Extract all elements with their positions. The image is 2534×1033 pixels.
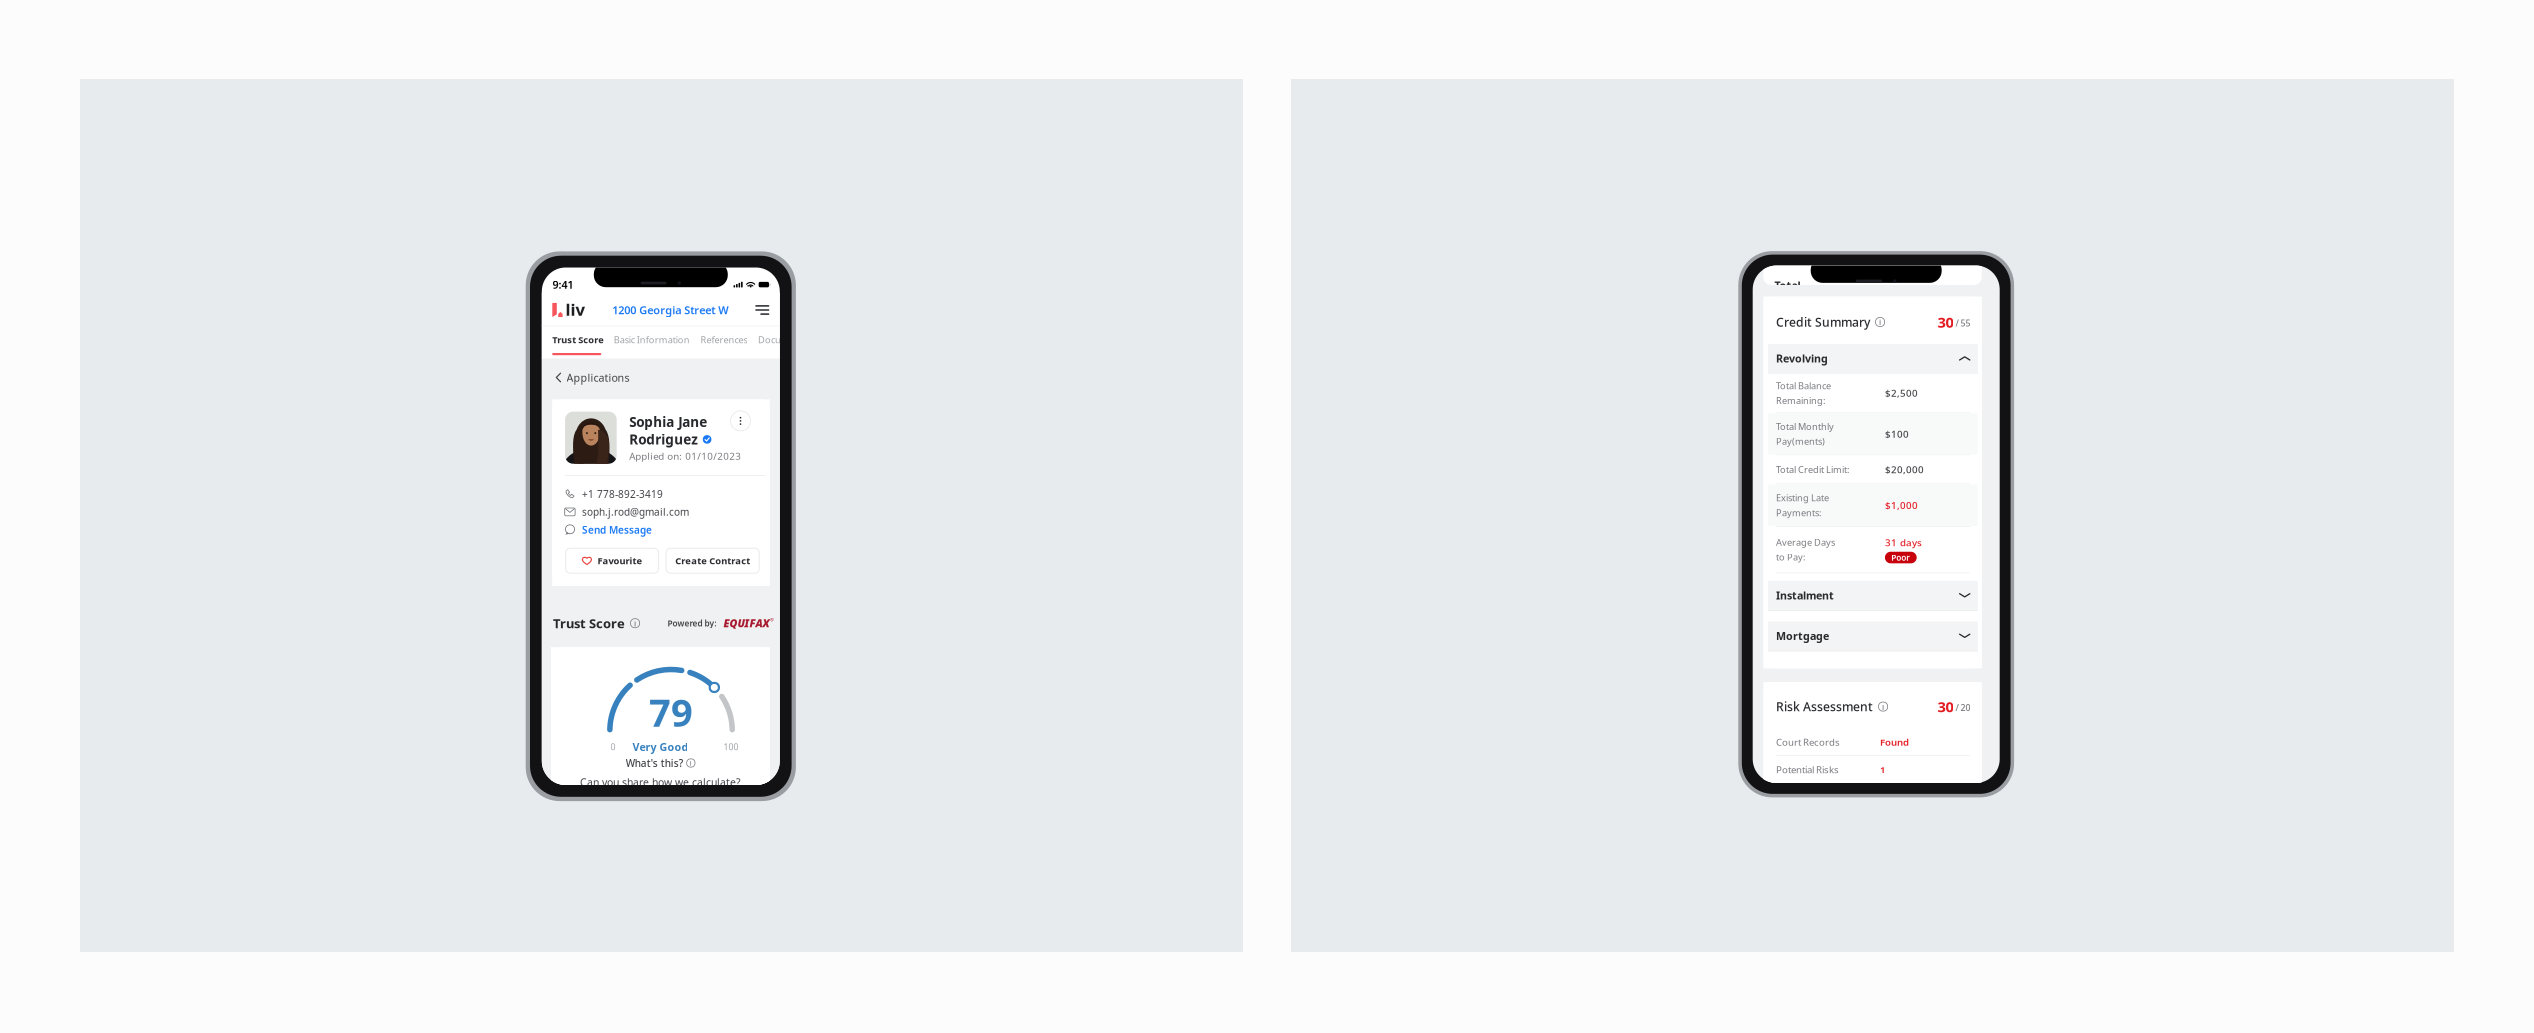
staticText: Trust Score [552,333,603,346]
staticText: Mortgage [1776,628,1829,643]
staticText: Pay(ments) [1776,435,1825,447]
staticText: Very Good [632,739,688,754]
button[interactable]: liv home [552,302,585,317]
staticText: Total [1774,278,1800,292]
button[interactable]: Send Message [565,523,755,536]
staticText: Poor [1891,552,1910,563]
staticText: i [634,618,636,629]
staticText: $20,000 [1885,463,1924,476]
staticText: / 20 [1953,702,1970,714]
button[interactable]: What's this? [551,756,770,770]
button[interactable]: 1200 Georgia Street W [612,303,728,317]
staticText: Total Monthly [1776,420,1834,433]
button[interactable]: Mortgage [1768,621,1978,650]
staticText: References [700,333,747,346]
staticText: $1,000 [1885,498,1918,512]
staticText: $2,500 [1885,386,1918,400]
staticText: Remaining: [1776,394,1825,407]
staticText: 0 [610,741,615,753]
staticText: i [1879,317,1881,327]
button[interactable]: Menu [755,305,769,315]
staticText: 30 [1937,697,1953,717]
staticText: Total Balance [1776,379,1831,392]
staticText: / 55 [1953,317,1970,329]
staticText: Total Credit Limit: [1776,463,1849,476]
staticText: Revolving [1776,351,1828,366]
staticText: Payments: [1776,506,1821,519]
staticText: EQUIFAX [723,616,769,630]
staticText: Trust Score [553,614,625,632]
staticText: What's this? [626,756,683,770]
staticText: Risk Assessment [1776,698,1873,715]
button[interactable]: Revolving [1768,344,1978,373]
staticText: Can you share how we calculate? [580,775,741,789]
staticText: 100 [723,741,738,753]
staticText: i [1882,701,1884,712]
staticText: Credit Summary [1776,314,1870,330]
staticText: Applications [566,370,629,385]
staticText: Powered by: [667,618,716,629]
staticText: soph.j.rod@gmail.com [582,505,689,519]
staticText: ® [770,617,774,623]
staticText: 9:41 [552,277,573,292]
staticText: Instalment [1776,588,1834,602]
button[interactable]: Favourite [566,548,659,573]
button[interactable]: Instalment [1768,581,1978,610]
staticText: to Pay: [1776,551,1805,563]
staticText: Basic Information [614,333,690,346]
button[interactable]: Create Contract [666,548,759,573]
staticText: 1 [1880,763,1885,776]
staticText: Docum [758,333,790,346]
staticText: Court Records [1776,736,1840,749]
staticText: Average Days [1776,536,1835,548]
staticText: Applied on: 01/10/2023 [629,449,741,463]
staticText: 1200 Georgia Street W [612,303,728,317]
staticText: Favourite [597,554,642,567]
button[interactable]: soph.j.rod@gmail.com [565,505,755,518]
staticText: 31 days [1885,536,1922,549]
staticText: Create Contract [675,554,750,567]
staticText: 79 [649,686,693,738]
button[interactable]: +1 778-892-3419 [565,487,755,500]
staticText: liv [565,298,585,321]
staticText: +1 778-892-3419 [582,487,663,501]
staticText: i [690,759,692,768]
staticText: Rodriguez [629,430,698,448]
staticText: Send Message [582,523,652,537]
staticText: $100 [1885,427,1909,440]
staticText: Existing Late [1776,491,1829,504]
staticText: Found [1880,736,1909,749]
button[interactable]: Applications [556,367,676,387]
staticText: 30 [1937,312,1953,332]
staticText: Sophia Jane [629,412,707,431]
button[interactable]: More options [730,411,750,431]
staticText: Potential Risks [1776,763,1839,776]
